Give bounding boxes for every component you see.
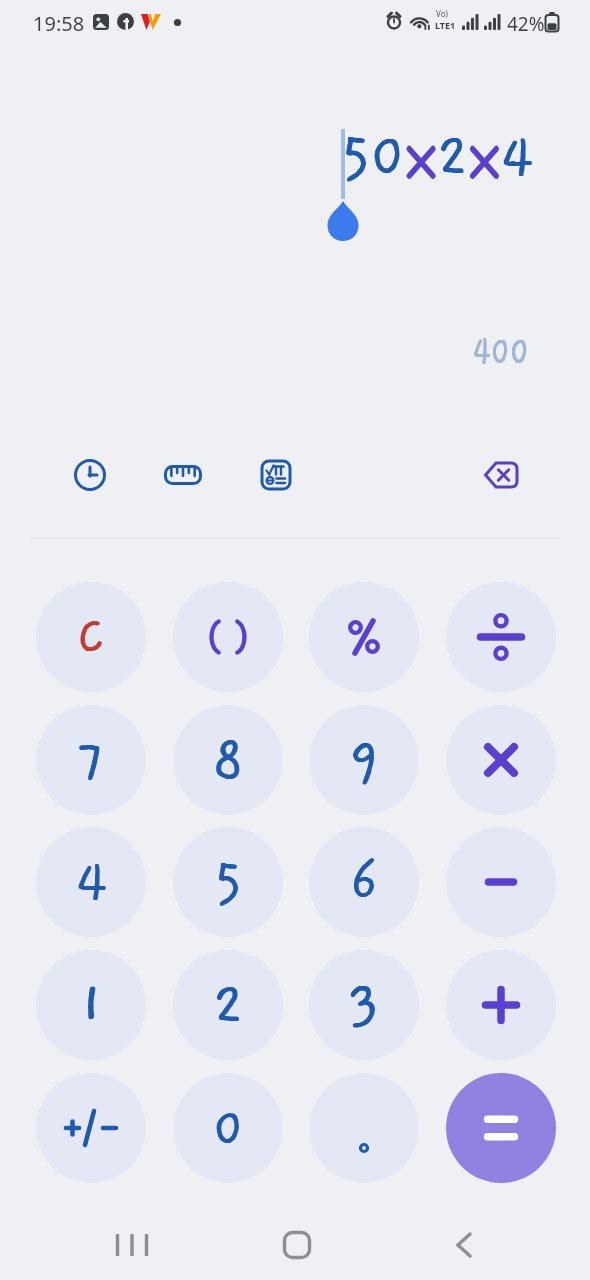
button[interactable]: 0	[173, 1073, 283, 1183]
button[interactable]: Back	[430, 1213, 494, 1277]
staticText: 400	[472, 329, 529, 375]
staticText: 0	[213, 1098, 244, 1158]
button[interactable]: 8	[173, 705, 283, 815]
button[interactable]: Scientific calculator	[252, 451, 300, 499]
button[interactable]: Subtract	[446, 827, 556, 937]
staticText: 50	[341, 122, 405, 190]
staticText: 5	[215, 849, 244, 915]
button[interactable]: Divide	[446, 582, 556, 692]
staticText: C	[78, 610, 104, 664]
staticText: 4	[75, 849, 108, 915]
staticText: 42%	[507, 11, 545, 37]
staticText: 2	[437, 122, 469, 190]
button[interactable]: 6	[309, 827, 419, 937]
button[interactable]: Unit converter	[159, 451, 207, 499]
staticText: 4	[76, 849, 109, 915]
button[interactable]: Home	[265, 1213, 329, 1277]
staticText: LTE1	[435, 19, 456, 31]
button[interactable]: Equals	[446, 1073, 556, 1183]
button[interactable]: Multiply	[446, 705, 556, 815]
button[interactable]: Recents	[101, 1213, 165, 1277]
staticText: 8	[212, 727, 244, 793]
staticText: 2	[213, 972, 244, 1038]
staticText: Vo)	[436, 8, 448, 19]
staticText: 4	[500, 122, 534, 190]
staticText: 19:58	[33, 10, 85, 37]
staticText: 8	[212, 727, 244, 793]
staticText: 4	[500, 122, 534, 190]
staticText: 9	[349, 727, 379, 793]
staticText: 7	[78, 727, 106, 793]
staticText: 1	[80, 972, 104, 1038]
button[interactable]: 1	[36, 950, 146, 1060]
staticText: 2	[214, 972, 245, 1038]
button[interactable]: Backspace	[477, 451, 525, 499]
staticText: 50	[342, 122, 406, 190]
button[interactable]: 9	[309, 705, 419, 815]
staticText: 9	[349, 727, 379, 793]
button[interactable]: +/-	[36, 1073, 146, 1183]
staticText: 7	[77, 727, 105, 793]
staticText: 6	[351, 849, 379, 915]
staticText: 2	[438, 122, 469, 190]
button[interactable]: %	[309, 582, 419, 692]
staticText: 0	[214, 1098, 245, 1158]
staticText: 2	[437, 122, 469, 190]
staticText: 400	[473, 329, 530, 375]
staticText: 400	[472, 329, 529, 375]
button[interactable]: 3	[309, 950, 419, 1060]
staticText: 6	[350, 849, 378, 915]
staticText: C	[79, 610, 105, 664]
staticText: 1	[80, 972, 103, 1038]
staticText: C	[78, 610, 104, 664]
button[interactable]: History	[66, 451, 114, 499]
staticText: 50	[341, 122, 405, 190]
button[interactable]: C	[36, 582, 146, 692]
staticText: 2	[213, 972, 244, 1038]
button[interactable]: Add	[446, 950, 556, 1060]
button[interactable]: 2	[173, 950, 283, 1060]
button[interactable]: ()	[173, 582, 283, 692]
staticText: 3	[348, 972, 380, 1038]
staticText: 7	[77, 727, 105, 793]
staticText: 3	[348, 972, 380, 1038]
staticText: 9	[350, 727, 380, 793]
staticText: 4	[75, 849, 108, 915]
staticText: 1	[80, 972, 103, 1038]
staticText: 8	[213, 727, 245, 793]
staticText: 4	[501, 122, 535, 190]
staticText: 6	[350, 849, 378, 915]
staticText: 5	[214, 849, 243, 915]
staticText: 0	[213, 1098, 244, 1158]
button[interactable]: 5	[173, 827, 283, 937]
button[interactable]: Decimal point	[309, 1073, 419, 1183]
button[interactable]: 7	[36, 705, 146, 815]
button[interactable]: 4	[36, 827, 146, 937]
staticText: 5	[214, 849, 243, 915]
staticText: 3	[349, 972, 381, 1038]
